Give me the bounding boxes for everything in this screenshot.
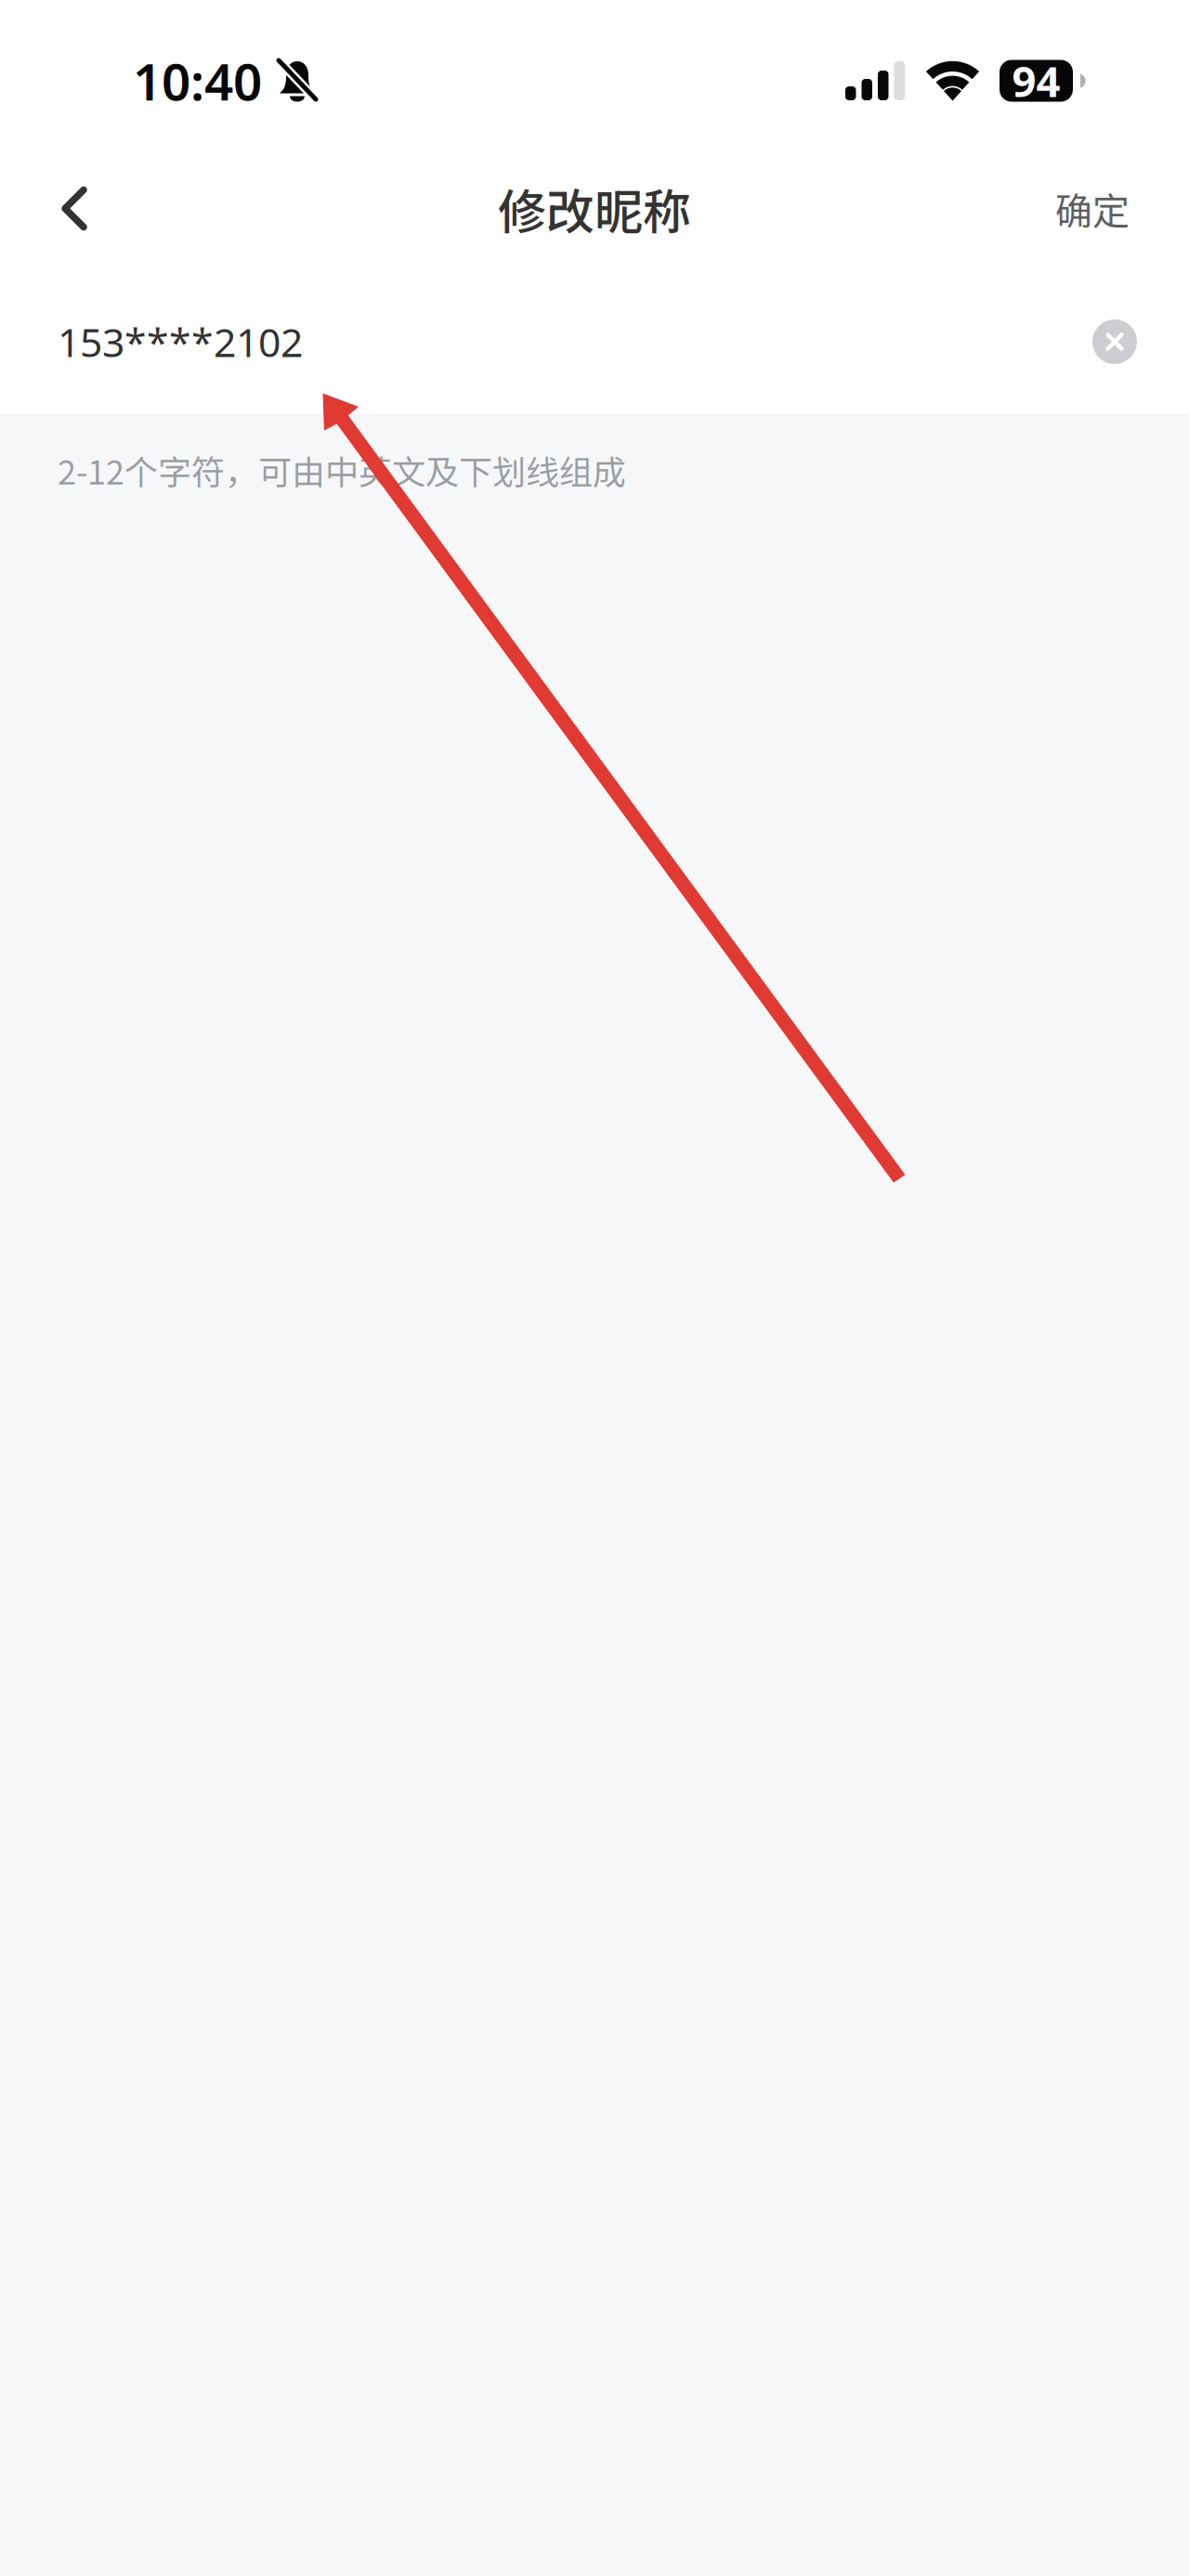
staticText: 153****2102 [58, 315, 303, 368]
staticText: 94 [1012, 53, 1060, 109]
button[interactable]: Back [0, 151, 149, 266]
staticText: 确定 [1055, 182, 1130, 235]
staticText: 10:40 [133, 47, 262, 114]
staticText: 2-12个字符，可由中英文及下划线组成 [58, 446, 626, 494]
button[interactable]: Clear text [1066, 293, 1163, 390]
button[interactable]: 确定 [996, 151, 1189, 266]
button[interactable]: Nickname [0, 278, 1189, 413]
staticText: 修改昵称 [498, 174, 691, 243]
